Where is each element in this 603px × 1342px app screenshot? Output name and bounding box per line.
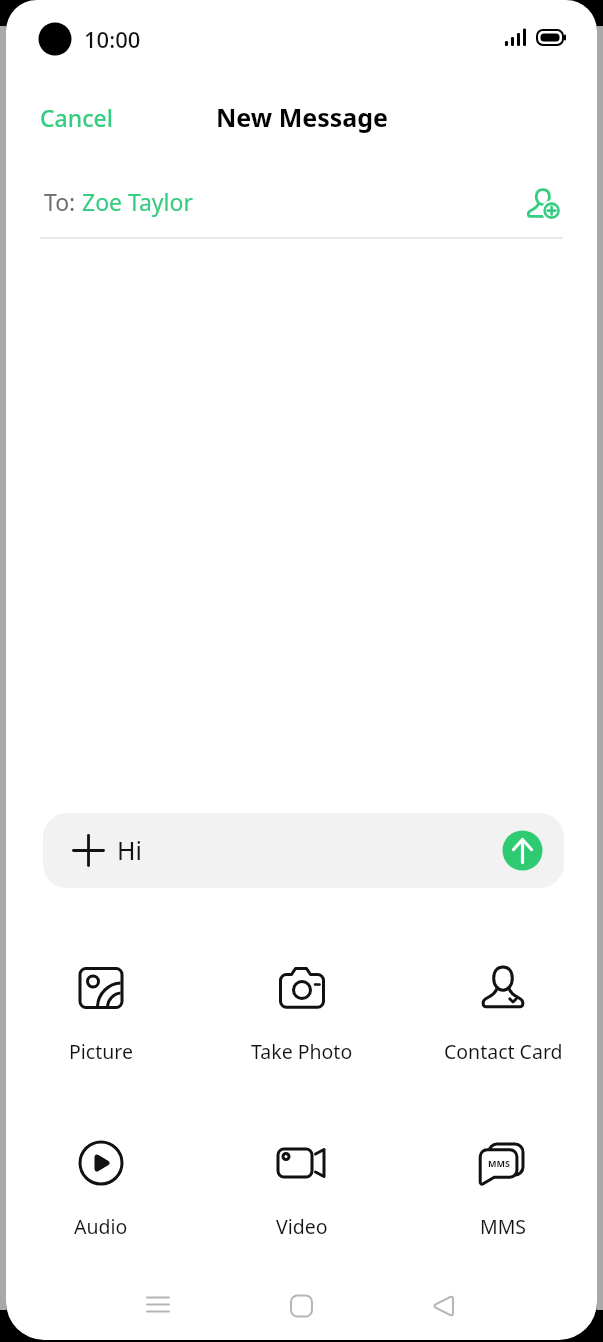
- button[interactable]: Cancel: [30, 96, 123, 139]
- staticText: To:: [44, 186, 82, 217]
- staticText: Hi: [117, 833, 142, 867]
- staticText: Contact Card: [444, 1038, 563, 1065]
- staticText: New Message: [216, 100, 388, 134]
- staticText: Audio: [74, 1213, 128, 1240]
- button[interactable]: [278, 1280, 326, 1328]
- staticText: Picture: [69, 1038, 133, 1065]
- button[interactable]: Hi: [43, 813, 564, 888]
- button[interactable]: [522, 178, 574, 230]
- staticText: MMS: [488, 1157, 510, 1169]
- button[interactable]: Video: [237, 1115, 367, 1245]
- staticText: Take Photo: [251, 1038, 353, 1065]
- staticText: Zoe Taylor: [82, 186, 193, 217]
- staticText: Video: [276, 1213, 328, 1240]
- button[interactable]: Audio: [36, 1115, 166, 1245]
- button[interactable]: Take Photo: [237, 940, 367, 1070]
- button[interactable]: MMS: [438, 1115, 568, 1245]
- button[interactable]: Contact Card: [438, 940, 568, 1070]
- staticText: 10:00: [84, 24, 141, 54]
- staticText: MMS: [480, 1213, 527, 1240]
- staticText: Cancel: [40, 102, 113, 133]
- button[interactable]: Picture: [36, 940, 166, 1070]
- button[interactable]: [135, 1280, 183, 1328]
- button[interactable]: [421, 1280, 469, 1328]
